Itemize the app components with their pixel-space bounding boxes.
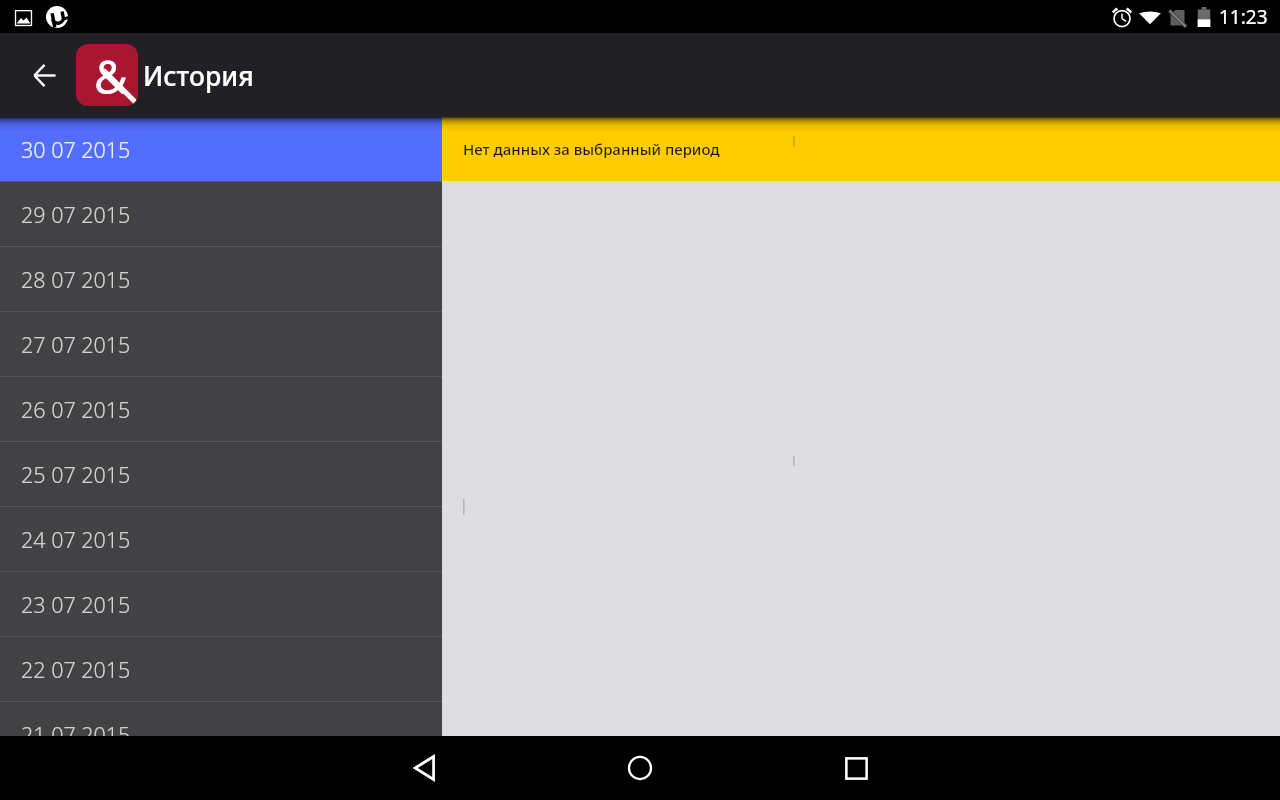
button[interactable]: Recent apps bbox=[816, 736, 896, 800]
staticText: 27 07 2015 bbox=[21, 330, 131, 359]
button[interactable]: 28 07 2015 bbox=[0, 247, 442, 311]
staticText: 24 07 2015 bbox=[21, 525, 131, 554]
staticText: Нет данных за выбранный период bbox=[463, 139, 720, 159]
staticText: 29 07 2015 bbox=[21, 200, 131, 229]
button[interactable]: 30 07 2015 bbox=[0, 117, 442, 181]
button[interactable]: 24 07 2015 bbox=[0, 507, 442, 571]
button[interactable]: 25 07 2015 bbox=[0, 442, 442, 506]
staticText: 30 07 2015 bbox=[21, 135, 131, 164]
staticText: 23 07 2015 bbox=[21, 590, 131, 619]
staticText: 28 07 2015 bbox=[21, 265, 131, 294]
staticText: 11:23 bbox=[1219, 4, 1268, 30]
staticText: & bbox=[94, 45, 128, 106]
staticText: 25 07 2015 bbox=[21, 460, 131, 489]
staticText: 21 07 2015 bbox=[21, 720, 131, 736]
button[interactable]: 21 07 2015 bbox=[0, 702, 442, 736]
staticText: 26 07 2015 bbox=[21, 395, 131, 424]
button[interactable]: 27 07 2015 bbox=[0, 312, 442, 376]
button[interactable]: & bbox=[76, 33, 316, 117]
button[interactable]: Home bbox=[600, 736, 680, 800]
button[interactable]: Back bbox=[385, 736, 465, 800]
button[interactable]: Back bbox=[12, 43, 76, 107]
button[interactable]: 22 07 2015 bbox=[0, 637, 442, 701]
staticText: История bbox=[143, 58, 254, 94]
button[interactable]: 29 07 2015 bbox=[0, 182, 442, 246]
button[interactable]: 23 07 2015 bbox=[0, 572, 442, 636]
staticText: 22 07 2015 bbox=[21, 655, 131, 684]
button[interactable]: 26 07 2015 bbox=[0, 377, 442, 441]
